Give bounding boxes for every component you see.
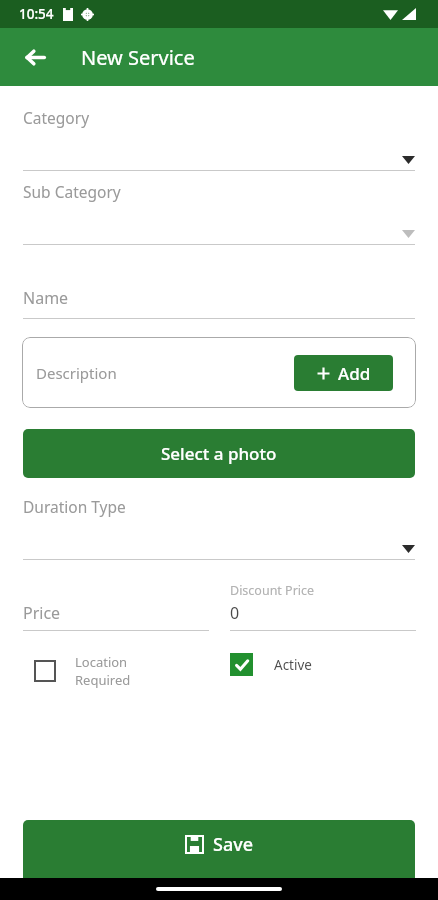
- staticText: Select a photo: [161, 442, 277, 465]
- other: Open Category dropdown: [402, 156, 415, 164]
- button[interactable]: Discount Price: [230, 582, 416, 624]
- staticText: 10:54: [19, 5, 54, 23]
- staticText: Duration Type: [23, 496, 126, 517]
- staticText: Required: [75, 671, 131, 689]
- button[interactable]: Sub Category: [0, 181, 438, 244]
- staticText: Save: [213, 832, 254, 857]
- staticText: Sub Category: [23, 181, 121, 202]
- staticText: Location: [75, 653, 128, 671]
- staticText: Description: [36, 363, 117, 383]
- button[interactable]: Select a photo: [23, 429, 415, 478]
- button[interactable]: Price: [23, 582, 209, 624]
- staticText: Add: [338, 362, 371, 385]
- button[interactable]: Back: [16, 38, 54, 76]
- button[interactable]: Name: [23, 281, 415, 315]
- button[interactable]: Location: [34, 653, 230, 689]
- staticText: Discount Price: [230, 582, 315, 599]
- button[interactable]: Duration Type: [0, 496, 438, 559]
- staticText: Active: [274, 656, 312, 674]
- staticText: Category: [23, 107, 90, 128]
- staticText: Price: [23, 602, 61, 624]
- staticText: New Service: [81, 44, 195, 71]
- staticText: 0: [230, 602, 240, 624]
- button[interactable]: Category: [0, 107, 438, 170]
- button[interactable]: Add: [294, 355, 393, 391]
- staticText: Name: [23, 287, 69, 309]
- button[interactable]: Active: [230, 653, 312, 676]
- other: Open Duration Type dropdown: [402, 545, 415, 553]
- other: Open Sub Category dropdown: [402, 230, 415, 238]
- button[interactable]: Save: [23, 820, 415, 878]
